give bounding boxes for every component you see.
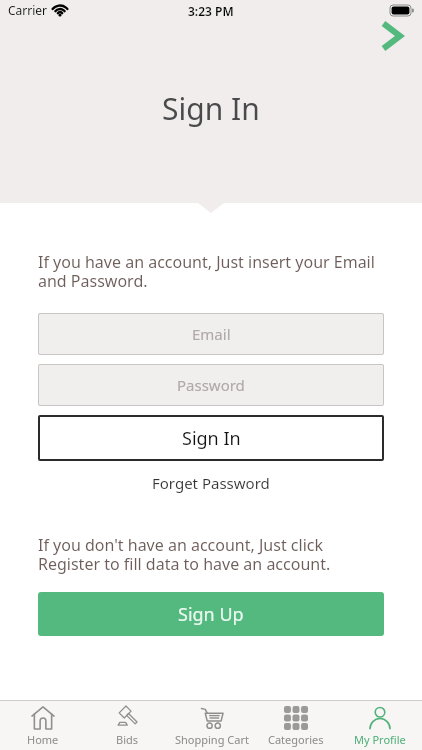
button[interactable]: Bids <box>85 701 170 750</box>
staticText: If you don't have an account, Just click… <box>38 534 331 575</box>
staticText: Carrier <box>8 2 48 18</box>
button[interactable]: Sign In <box>38 415 384 461</box>
staticText: Sign Up <box>178 602 244 627</box>
staticText: Sign In <box>182 426 241 451</box>
staticText: Shopping Cart <box>175 732 249 747</box>
button[interactable]: Email <box>38 313 384 355</box>
staticText: Categories <box>268 732 324 747</box>
button[interactable]: Shopping Cart <box>170 701 254 750</box>
staticText: Password <box>177 375 245 395</box>
button[interactable]: Forget Password <box>146 473 276 493</box>
staticText: Forget Password <box>152 473 270 493</box>
button[interactable]: Password <box>38 364 384 406</box>
button[interactable] <box>372 15 412 57</box>
staticText: Bids <box>116 732 139 747</box>
staticText: My Profile <box>354 732 406 747</box>
button[interactable]: Home <box>0 701 85 750</box>
staticText: If you have an account, Just insert your… <box>38 251 375 292</box>
staticText: Home <box>27 732 59 747</box>
button[interactable]: Categories <box>254 701 338 750</box>
button[interactable]: Sign Up <box>38 592 384 636</box>
staticText: Email <box>192 324 231 344</box>
button[interactable]: My Profile <box>338 701 422 750</box>
staticText: Sign In <box>162 88 260 129</box>
staticText: 3:23 PM <box>188 3 234 19</box>
